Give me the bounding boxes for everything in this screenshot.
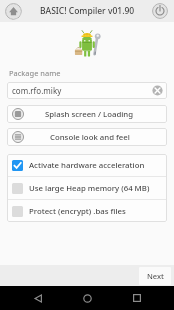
button[interactable]: com.rfo.miky bbox=[7, 82, 167, 99]
staticText: com.rfo.miky bbox=[12, 85, 62, 96]
button[interactable]: Clear package name bbox=[151, 84, 164, 97]
staticText: Splash screen / Loading bbox=[45, 109, 134, 120]
staticText: Activate hardware acceleration bbox=[29, 160, 145, 171]
button[interactable]: Back bbox=[26, 286, 50, 310]
staticText: Protect (encrypt) .bas files bbox=[29, 206, 126, 217]
staticText: Console look and feel bbox=[50, 132, 130, 143]
button[interactable]: Protect (encrypt) .bas files bbox=[7, 200, 167, 222]
button[interactable]: Activate hardware acceleration bbox=[7, 154, 167, 176]
button[interactable]: Use large Heap memory (64 MB) bbox=[7, 177, 167, 199]
button[interactable]: Home bbox=[4, 2, 22, 20]
button[interactable]: Recent apps bbox=[125, 286, 149, 310]
staticText: Use large Heap memory (64 MB) bbox=[29, 183, 150, 194]
staticText: BASIC! Compiler v01.90 bbox=[40, 5, 135, 17]
button[interactable]: Console look and feel bbox=[7, 128, 167, 146]
button[interactable]: Home bbox=[75, 286, 99, 310]
button[interactable]: Next bbox=[139, 267, 171, 285]
button[interactable]: Splash screen / Loading bbox=[7, 105, 167, 123]
staticText: Next bbox=[147, 271, 164, 281]
staticText: Package name bbox=[9, 68, 61, 78]
button[interactable]: Exit bbox=[151, 2, 169, 20]
